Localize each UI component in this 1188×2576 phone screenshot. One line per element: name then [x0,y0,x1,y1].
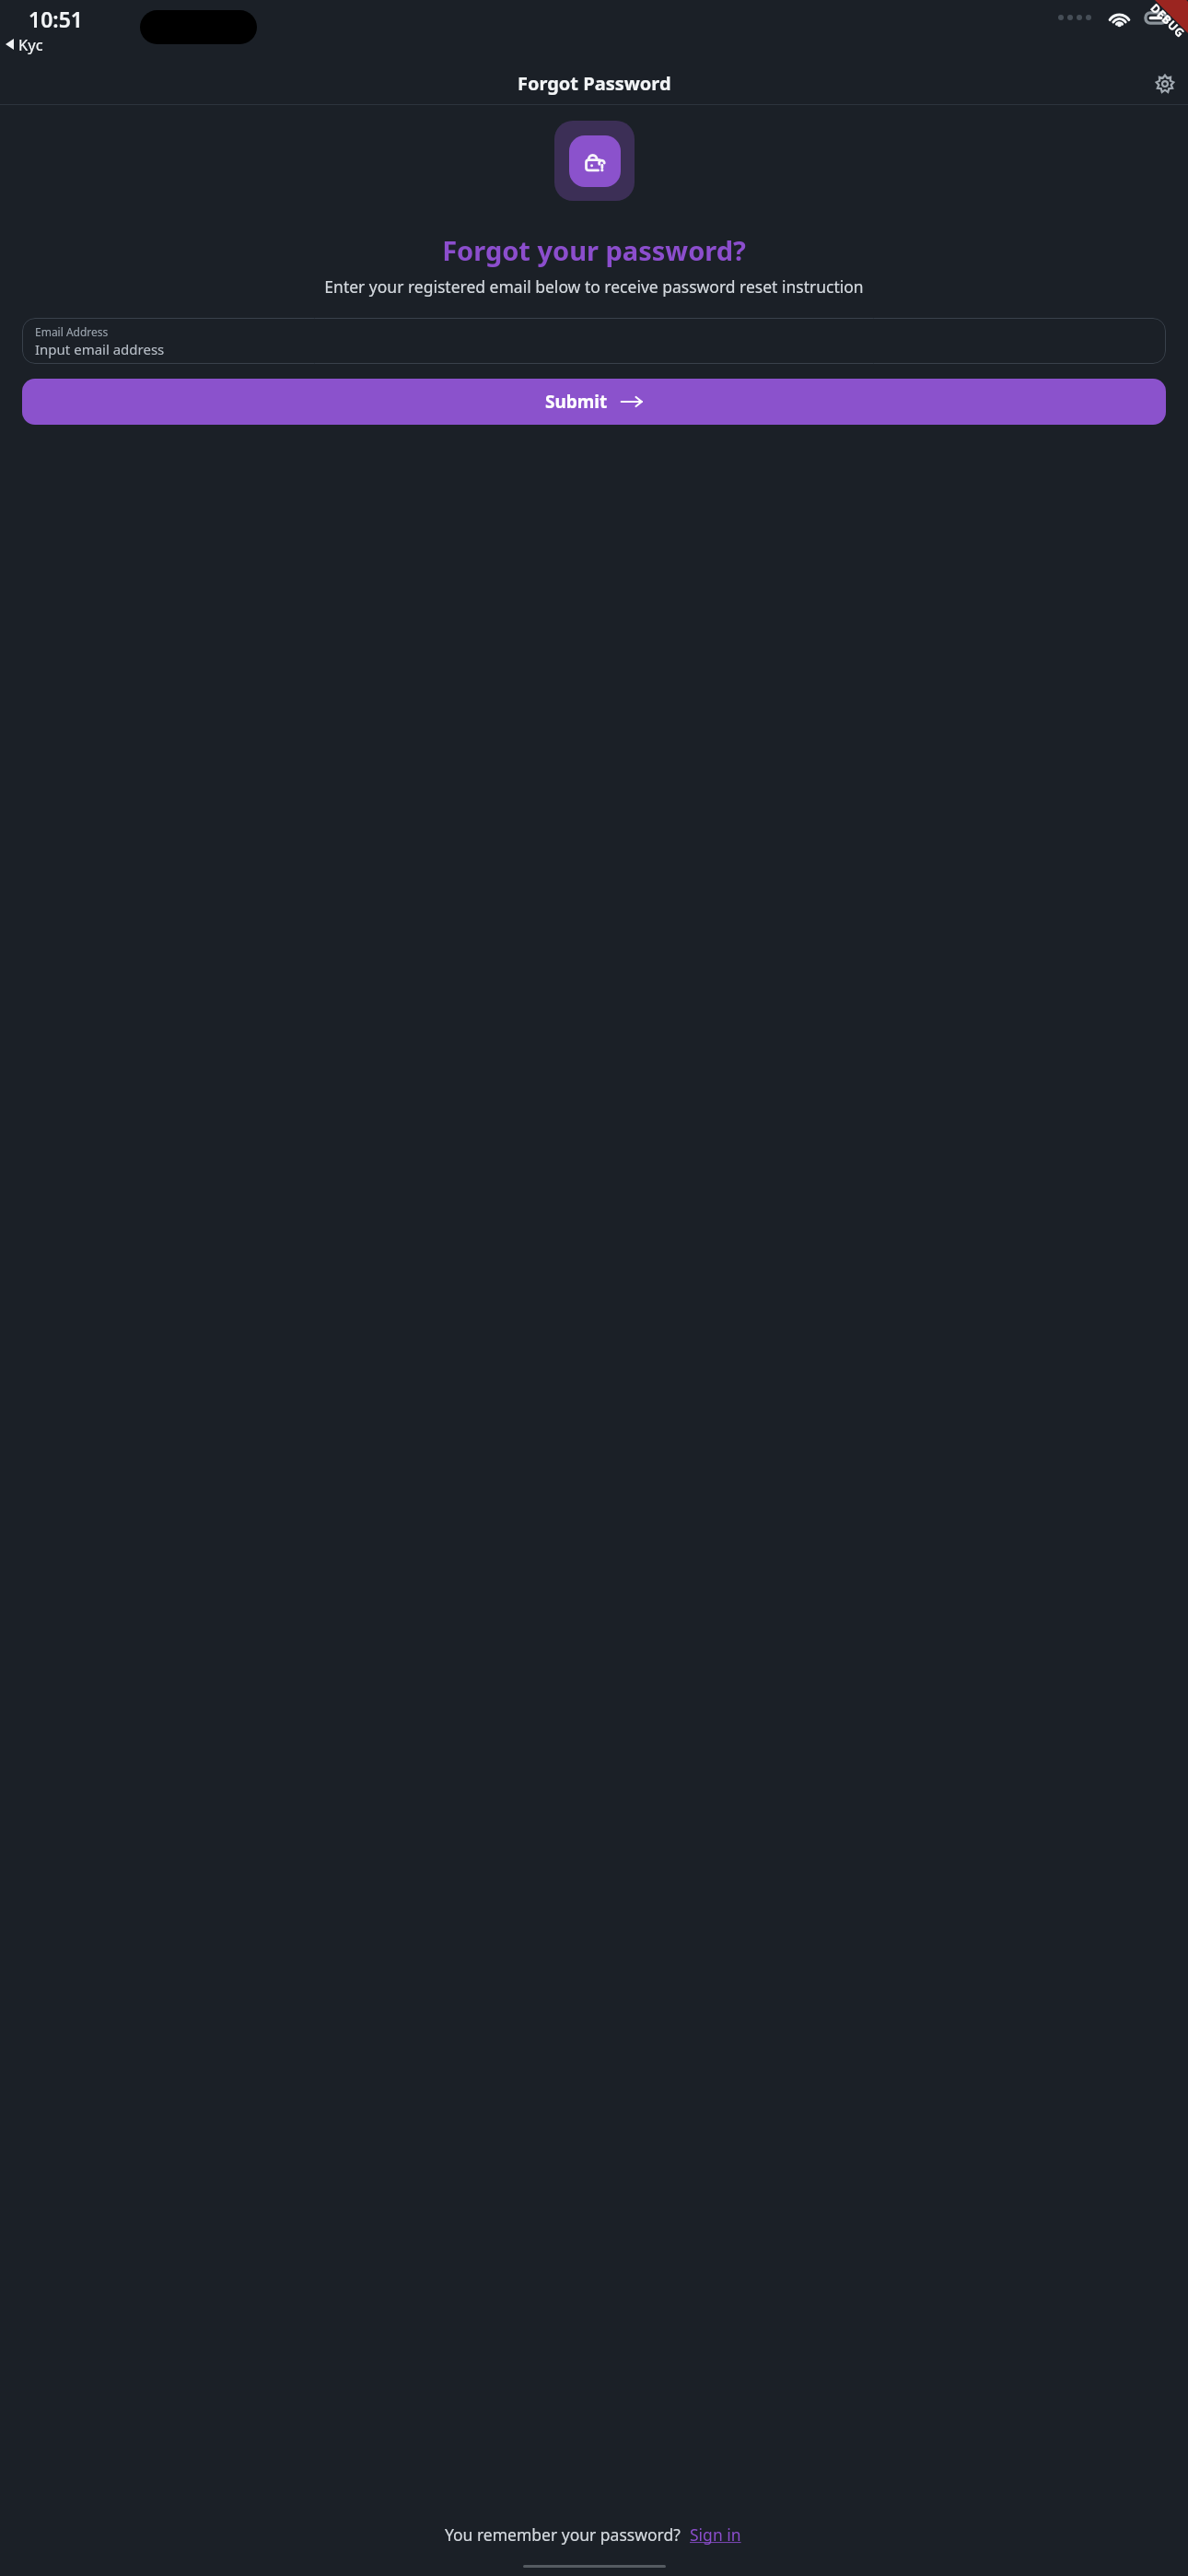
staticText: Forgot your password? [442,232,746,268]
staticText: DEBUG [1147,0,1188,41]
staticText: Input email address [35,340,165,358]
button[interactable]: Back to Kyc [4,32,45,56]
staticText: Enter your registered email below to rec… [324,275,864,298]
button[interactable]: Settings [1148,67,1182,100]
staticText: Kyc [18,34,43,54]
staticText: You remember your password? [445,2523,681,2546]
button[interactable]: Email Address [22,318,1166,364]
staticText: Forgot Password [518,71,671,96]
staticText: Submit [545,390,608,414]
staticText: Email Address [35,324,109,339]
staticText: 10:51 [29,5,83,33]
staticText: Sign in [690,2523,741,2546]
button[interactable]: Submit [22,379,1166,425]
button[interactable]: Sign in [687,2522,744,2547]
